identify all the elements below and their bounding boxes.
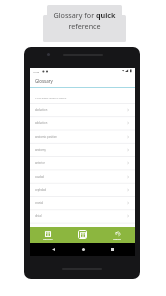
staticText: Glossary bbox=[35, 78, 53, 84]
staticText: cephalad bbox=[35, 188, 47, 192]
staticText: Glossary for quick reference bbox=[53, 10, 116, 31]
button[interactable]: anterior bbox=[30, 156, 135, 169]
button[interactable]: adduction bbox=[30, 116, 135, 129]
button[interactable]: History bbox=[100, 227, 135, 243]
button[interactable]: abduction bbox=[30, 103, 135, 116]
staticText: caudad bbox=[35, 175, 44, 179]
button[interactable]: Glossary bbox=[30, 227, 65, 243]
staticText: anatomic position bbox=[35, 135, 57, 139]
button[interactable]: anatomy bbox=[30, 143, 135, 156]
staticText: cranial bbox=[35, 201, 44, 205]
button[interactable]: Back bbox=[46, 243, 60, 256]
button[interactable]: Terms bbox=[65, 227, 100, 243]
button[interactable]: anatomic position bbox=[30, 130, 135, 143]
staticText: ANATOMIC DEFINITIONS bbox=[35, 96, 67, 99]
staticText: History bbox=[113, 237, 122, 240]
button[interactable]: Recents bbox=[105, 243, 119, 256]
button[interactable]: cranial bbox=[30, 196, 135, 209]
staticText: 10:50 bbox=[33, 70, 40, 73]
button[interactable]: Home bbox=[76, 243, 90, 256]
staticText: anatomy bbox=[35, 148, 46, 152]
button[interactable]: cephalad bbox=[30, 183, 135, 196]
staticText: anterior bbox=[35, 161, 45, 165]
staticText: adduction bbox=[35, 121, 48, 125]
staticText: Glossary bbox=[43, 237, 53, 240]
button[interactable]: distal bbox=[30, 209, 135, 222]
staticText: distal bbox=[35, 214, 42, 218]
staticText: abduction bbox=[35, 108, 48, 112]
button[interactable]: caudad bbox=[30, 170, 135, 183]
